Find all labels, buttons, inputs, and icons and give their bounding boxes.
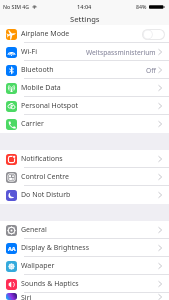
button[interactable]: AA [0, 239, 169, 257]
staticText: Weltspassministerium [86, 48, 156, 57]
staticText: Bluetooth [21, 65, 54, 75]
staticText: AA [8, 245, 16, 252]
button[interactable]: Bluetooth [0, 61, 169, 79]
staticText: Display & Brightness [21, 243, 90, 253]
staticText: Do Not Disturb [21, 190, 71, 200]
staticText: Airplane Mode [21, 29, 70, 39]
button[interactable]: Siri [0, 293, 169, 300]
staticText: Wallpaper [21, 261, 55, 271]
staticText: Siri [21, 293, 32, 300]
staticText: No SIM 4G [3, 3, 30, 10]
button[interactable]: Personal Hotspot [0, 97, 169, 115]
staticText: Personal Hotspot [21, 101, 78, 111]
staticText: General [21, 225, 47, 235]
staticText: Wi-Fi [21, 47, 38, 57]
staticText: Notifications [21, 154, 63, 164]
button[interactable]: Airplane Mode [0, 25, 169, 43]
button[interactable]: Wi-Fi [0, 43, 169, 61]
staticText: Carrier [21, 119, 44, 129]
button[interactable]: Notifications [0, 150, 169, 168]
staticText: Mobile Data [21, 83, 61, 93]
staticText: Control Centre [21, 172, 70, 182]
button[interactable]: Wallpaper [0, 257, 169, 275]
staticText: Off [146, 66, 156, 75]
button[interactable]: Mobile Data [0, 79, 169, 97]
staticText: Settings [70, 14, 100, 24]
staticText: Sounds & Haptics [21, 279, 79, 289]
button[interactable]: General [0, 221, 169, 239]
button[interactable]: Carrier [0, 115, 169, 133]
button[interactable]: Do Not Disturb [0, 186, 169, 204]
button[interactable]: Control Centre [0, 168, 169, 186]
button[interactable]: Sounds & Haptics [0, 275, 169, 293]
staticText: 14:04 [77, 3, 92, 11]
staticText: 84% [136, 3, 147, 10]
